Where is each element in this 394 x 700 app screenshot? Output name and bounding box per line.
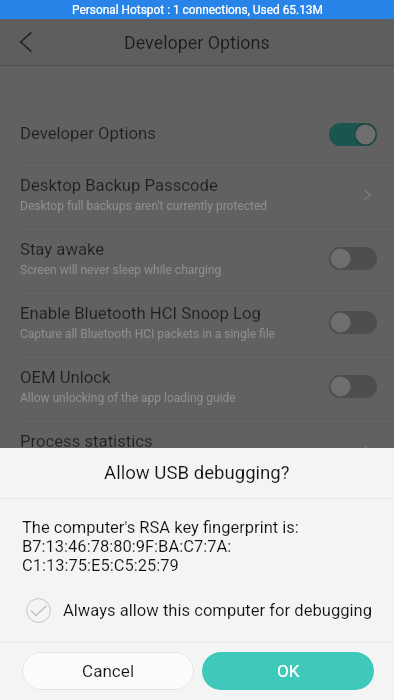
staticText: Allow unlocking of the app loading guide: [20, 391, 236, 405]
staticText: Desktop full backups aren't currently pr…: [20, 199, 268, 213]
staticText: OEM Unlock: [20, 368, 111, 388]
staticText: Enable Bluetooth HCI Snoop Log: [20, 304, 261, 324]
button[interactable]: Desktop Backup Passcode: [0, 163, 394, 226]
button[interactable]: OEM Unlock: [0, 355, 394, 418]
staticText: Always allow this computer for debugging: [63, 601, 373, 620]
staticText: Capture all Bluetooth HCI packets in a s…: [20, 327, 275, 341]
staticText: Personal Hotspot : 1 connections, Used 6…: [72, 3, 323, 17]
staticText: Allow USB debugging?: [104, 462, 290, 484]
button[interactable]: Process statistics: [0, 419, 394, 482]
button[interactable]: Developer Options: [0, 106, 394, 162]
other: Open: [357, 185, 377, 205]
button[interactable]: Toggle off: [329, 247, 377, 270]
staticText: Developer Options: [20, 124, 156, 144]
button[interactable]: Always allow this computer for debugging: [0, 593, 394, 627]
button[interactable]: Toggle on: [329, 123, 377, 146]
staticText: Stay awake: [20, 240, 105, 260]
button[interactable]: Toggle off: [329, 311, 377, 334]
staticText: Desktop Backup Passcode: [20, 176, 218, 196]
staticText: Screen will never sleep while charging: [20, 263, 222, 277]
button[interactable]: Stay awake: [0, 227, 394, 290]
staticText: The computer's RSA key fingerprint is: B…: [22, 518, 299, 575]
other: Open: [357, 441, 377, 461]
staticText: OK: [277, 661, 300, 681]
staticText: Process statistics: [20, 432, 153, 452]
button[interactable]: OK: [202, 652, 374, 690]
staticText: Cancel: [82, 661, 135, 681]
staticText: Wonkish stats about running processes: [20, 455, 231, 469]
button[interactable]: Toggle off: [329, 375, 377, 398]
button[interactable]: Back: [6, 22, 46, 62]
staticText: Developer Options: [124, 32, 270, 53]
button[interactable]: Cancel: [22, 652, 194, 690]
button[interactable]: Enable Bluetooth HCI Snoop Log: [0, 291, 394, 354]
